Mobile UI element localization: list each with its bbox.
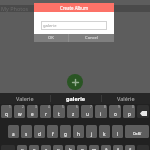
button[interactable]: a <box>8 125 19 138</box>
staticText: x <box>33 147 36 150</box>
button[interactable]: 7 <box>81 105 93 118</box>
staticText: 3 <box>35 105 37 109</box>
staticText: w <box>18 111 22 117</box>
button[interactable]: j <box>86 125 97 138</box>
button[interactable]: 2 <box>14 105 25 118</box>
staticText: Valerie <box>16 95 34 102</box>
button[interactable]: Valérie <box>102 93 150 104</box>
button[interactable]: n <box>77 145 87 150</box>
staticText: Create Album <box>60 5 89 11</box>
button[interactable]: l <box>112 125 123 138</box>
button[interactable]: Backspace <box>137 105 149 118</box>
staticText: 1 <box>9 105 11 109</box>
button[interactable]: 4 <box>40 105 51 118</box>
button[interactable]: s <box>21 125 32 138</box>
staticText: 7 <box>90 105 92 109</box>
button[interactable]: Cancel <box>69 34 114 42</box>
staticText: e <box>31 111 34 117</box>
button[interactable]: y <box>17 145 27 150</box>
staticText: 5 <box>62 105 64 109</box>
staticText: g <box>64 131 67 137</box>
staticText: l <box>117 131 119 137</box>
button[interactable]: h <box>73 125 84 138</box>
staticText: c <box>45 147 48 150</box>
staticText: s <box>25 131 28 137</box>
staticText: y <box>21 147 24 150</box>
staticText: m <box>92 147 97 150</box>
button[interactable]: 5 <box>53 105 65 118</box>
staticText: č <box>129 147 132 150</box>
button[interactable]: č <box>125 145 135 150</box>
button[interactable]: Add album <box>67 74 83 90</box>
button[interactable]: Další <box>125 125 149 138</box>
button[interactable]: š <box>113 145 123 150</box>
staticText: z <box>72 111 75 117</box>
button[interactable]: f <box>47 125 58 138</box>
staticText: i <box>100 111 102 117</box>
button[interactable]: ě <box>101 145 111 150</box>
staticText: OK <box>48 35 54 41</box>
button[interactable]: 1 <box>1 105 12 118</box>
button[interactable]: m <box>89 145 99 150</box>
staticText: u <box>86 111 89 117</box>
button[interactable]: 3 <box>27 105 38 118</box>
button[interactable]: b <box>65 145 75 150</box>
button[interactable]: galerie <box>51 93 101 104</box>
staticText: My Photos <box>1 5 29 12</box>
staticText: 6 <box>76 105 78 109</box>
staticText: Cancel <box>85 35 99 41</box>
staticText: k <box>103 131 106 137</box>
button[interactable]: k <box>99 125 110 138</box>
staticText: n <box>81 147 84 150</box>
button[interactable]: x <box>29 145 39 150</box>
staticText: j <box>91 131 93 137</box>
staticText: f <box>52 131 54 137</box>
staticText: h <box>77 131 80 137</box>
button[interactable]: d <box>34 125 45 138</box>
staticText: galerie <box>43 23 57 29</box>
staticText: 9 <box>118 105 120 109</box>
staticText: 2 <box>22 105 24 109</box>
staticText: š <box>117 147 120 150</box>
staticText: galerie <box>66 95 86 102</box>
button[interactable]: v <box>53 145 63 150</box>
staticText: v <box>57 147 60 150</box>
button[interactable]: c <box>41 145 51 150</box>
staticText: Další <box>133 131 142 136</box>
staticText: o <box>114 111 117 117</box>
staticText: ě <box>105 147 108 150</box>
staticText: d <box>38 131 41 137</box>
button[interactable]: 8 <box>95 105 107 118</box>
button[interactable]: g <box>60 125 71 138</box>
staticText: 8 <box>104 105 106 109</box>
button[interactable]: Valerie <box>0 93 50 104</box>
staticText: q <box>5 111 8 117</box>
staticText: t <box>58 111 60 117</box>
staticText: 0 <box>132 105 134 109</box>
button[interactable]: 9 <box>109 105 121 118</box>
staticText: b <box>69 147 72 150</box>
staticText: p <box>128 111 131 117</box>
staticText: a <box>12 131 15 137</box>
staticText: 4 <box>48 105 50 109</box>
staticText: r <box>45 111 47 117</box>
staticText: Valérie <box>117 95 135 102</box>
button[interactable]: OK <box>34 34 68 42</box>
button[interactable]: 0 <box>123 105 135 118</box>
button[interactable]: 6 <box>67 105 79 118</box>
